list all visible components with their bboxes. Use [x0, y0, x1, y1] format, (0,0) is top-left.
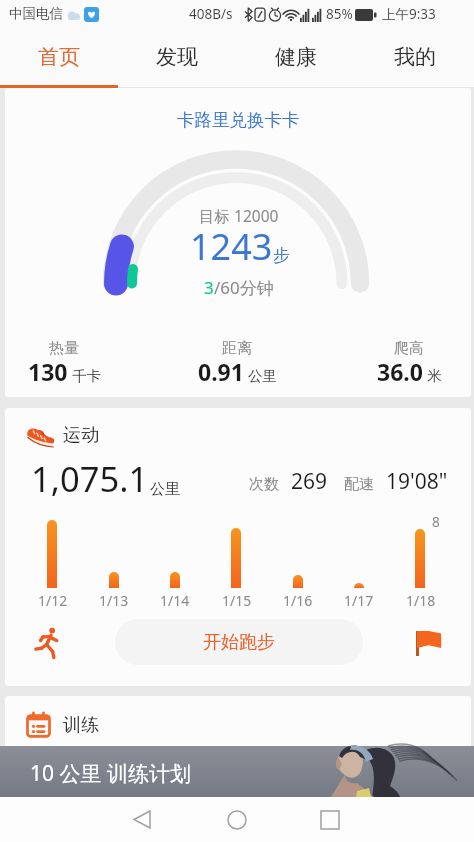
staticText: 36.0 — [377, 356, 423, 387]
button[interactable]: Start running — [24, 621, 70, 663]
staticText: 公里 — [248, 367, 277, 385]
staticText: 269 — [291, 467, 328, 496]
staticText: /60分钟 — [214, 276, 274, 299]
button[interactable]: Home — [214, 797, 259, 842]
staticText: 1/18 — [406, 591, 436, 610]
button[interactable]: Set goal — [406, 620, 450, 664]
staticText: 健康 — [275, 44, 317, 70]
button[interactable]: 爬高 — [339, 336, 471, 386]
staticText: 公里 — [150, 480, 180, 499]
staticText: 爬高 — [394, 339, 424, 358]
staticText: 408B/s — [189, 5, 233, 23]
staticText: 1/14 — [160, 591, 190, 610]
staticText: 千卡 — [72, 367, 101, 385]
staticText: 1/17 — [344, 591, 374, 610]
staticText: 中国电信 — [9, 5, 63, 22]
button[interactable]: 健康 — [236, 30, 355, 88]
staticText: 10 公里 训练计划 — [30, 759, 191, 788]
button[interactable]: 开始跑步 — [115, 619, 363, 665]
staticText: 首页 — [38, 44, 80, 70]
button[interactable]: Recents — [307, 797, 352, 842]
staticText: 1,075.1 — [31, 455, 149, 502]
staticText: 我的 — [394, 44, 436, 70]
staticText: 1/12 — [38, 591, 68, 610]
staticText: 上午9:33 — [382, 5, 436, 23]
button[interactable]: 热量 — [5, 336, 134, 386]
staticText: 1243 — [190, 222, 273, 271]
staticText: 目标 12000 — [199, 205, 279, 226]
staticText: 0.91 — [198, 356, 244, 387]
staticText: 训练 — [63, 714, 99, 737]
button[interactable]: 训练 — [26, 712, 99, 738]
staticText: 19'08" — [386, 467, 448, 496]
staticText: 米 — [427, 367, 442, 385]
button[interactable]: 卡路里兑换卡卡 — [177, 109, 300, 131]
staticText: 次数 — [249, 475, 279, 494]
button[interactable]: 距离 — [167, 336, 307, 386]
staticText: 1/15 — [222, 591, 252, 610]
button[interactable]: 发现 — [118, 30, 236, 88]
staticText: 运动 — [63, 424, 99, 447]
button[interactable]: 运动 — [26, 424, 99, 447]
staticText: 发现 — [156, 44, 198, 70]
staticText: 8 — [432, 513, 440, 531]
staticText: 1/13 — [99, 591, 129, 610]
staticText: 开始跑步 — [203, 631, 275, 654]
button[interactable]: 我的 — [355, 30, 474, 88]
button[interactable]: 10 公里 训练计划 — [0, 746, 474, 797]
staticText: 3 — [204, 276, 214, 299]
button[interactable]: Back — [119, 797, 164, 842]
staticText: 热量 — [49, 339, 79, 358]
staticText: 步 — [273, 245, 290, 266]
button[interactable]: 首页 — [0, 30, 118, 88]
staticText: 1/16 — [283, 591, 313, 610]
staticText: 距离 — [222, 339, 252, 358]
staticText: 85% — [326, 5, 353, 23]
staticText: 配速 — [344, 475, 374, 494]
staticText: 130 — [28, 356, 68, 387]
